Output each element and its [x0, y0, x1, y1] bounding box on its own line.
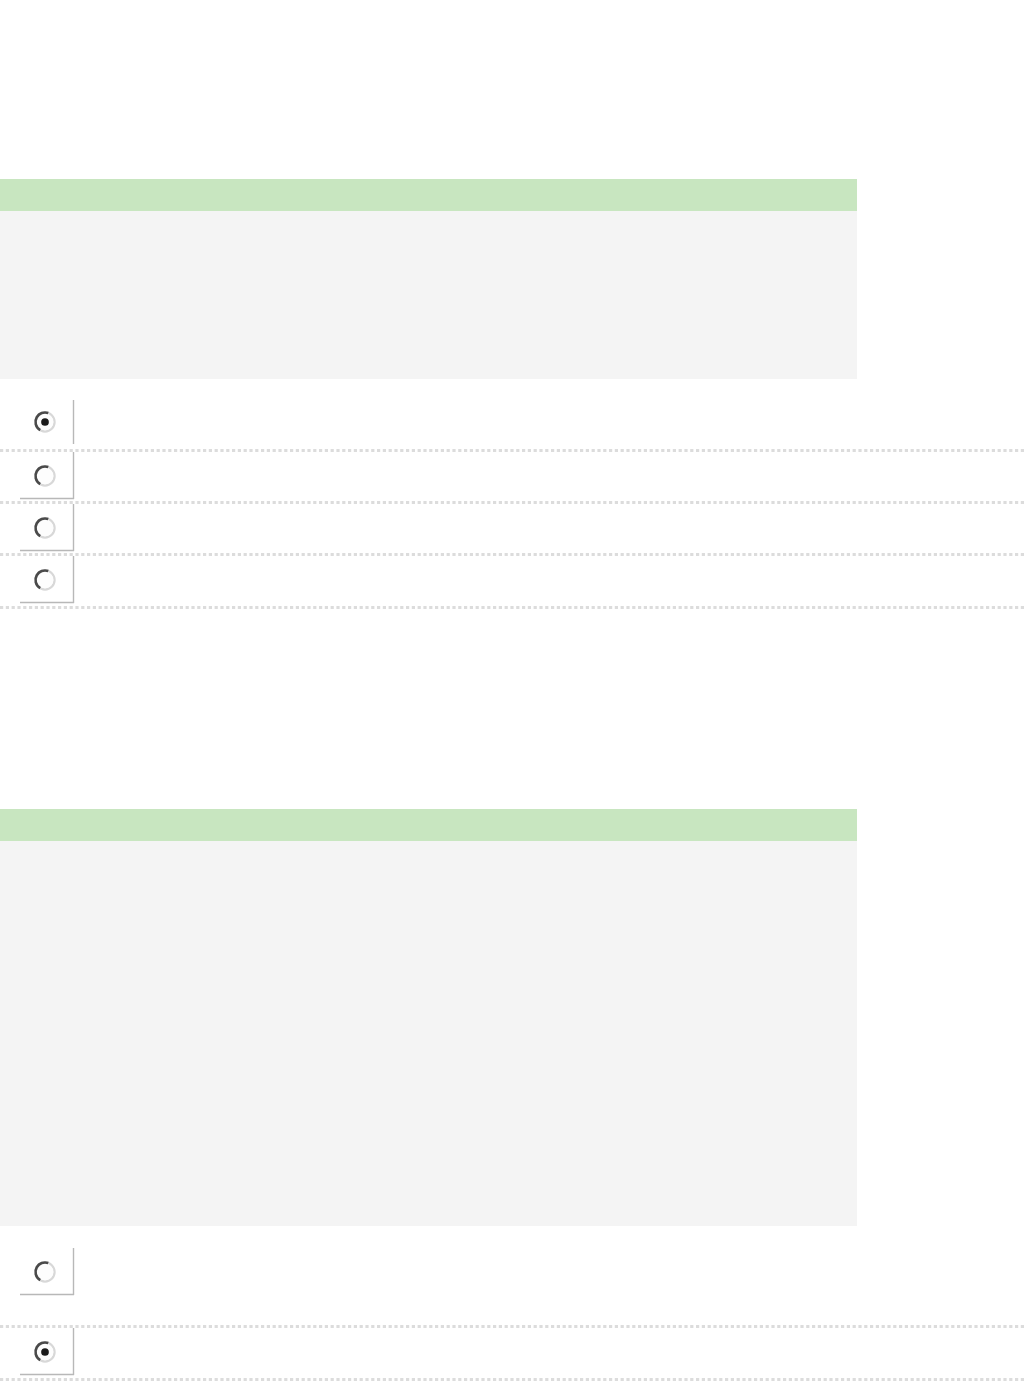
- button[interactable]: Option: [0, 452, 1024, 501]
- button[interactable]: Selected option: [0, 1328, 1024, 1378]
- button[interactable]: Selected option: [0, 400, 1024, 449]
- button[interactable]: Option: [0, 1248, 1024, 1325]
- button[interactable]: Option: [0, 556, 1024, 606]
- button[interactable]: Option: [0, 504, 1024, 553]
